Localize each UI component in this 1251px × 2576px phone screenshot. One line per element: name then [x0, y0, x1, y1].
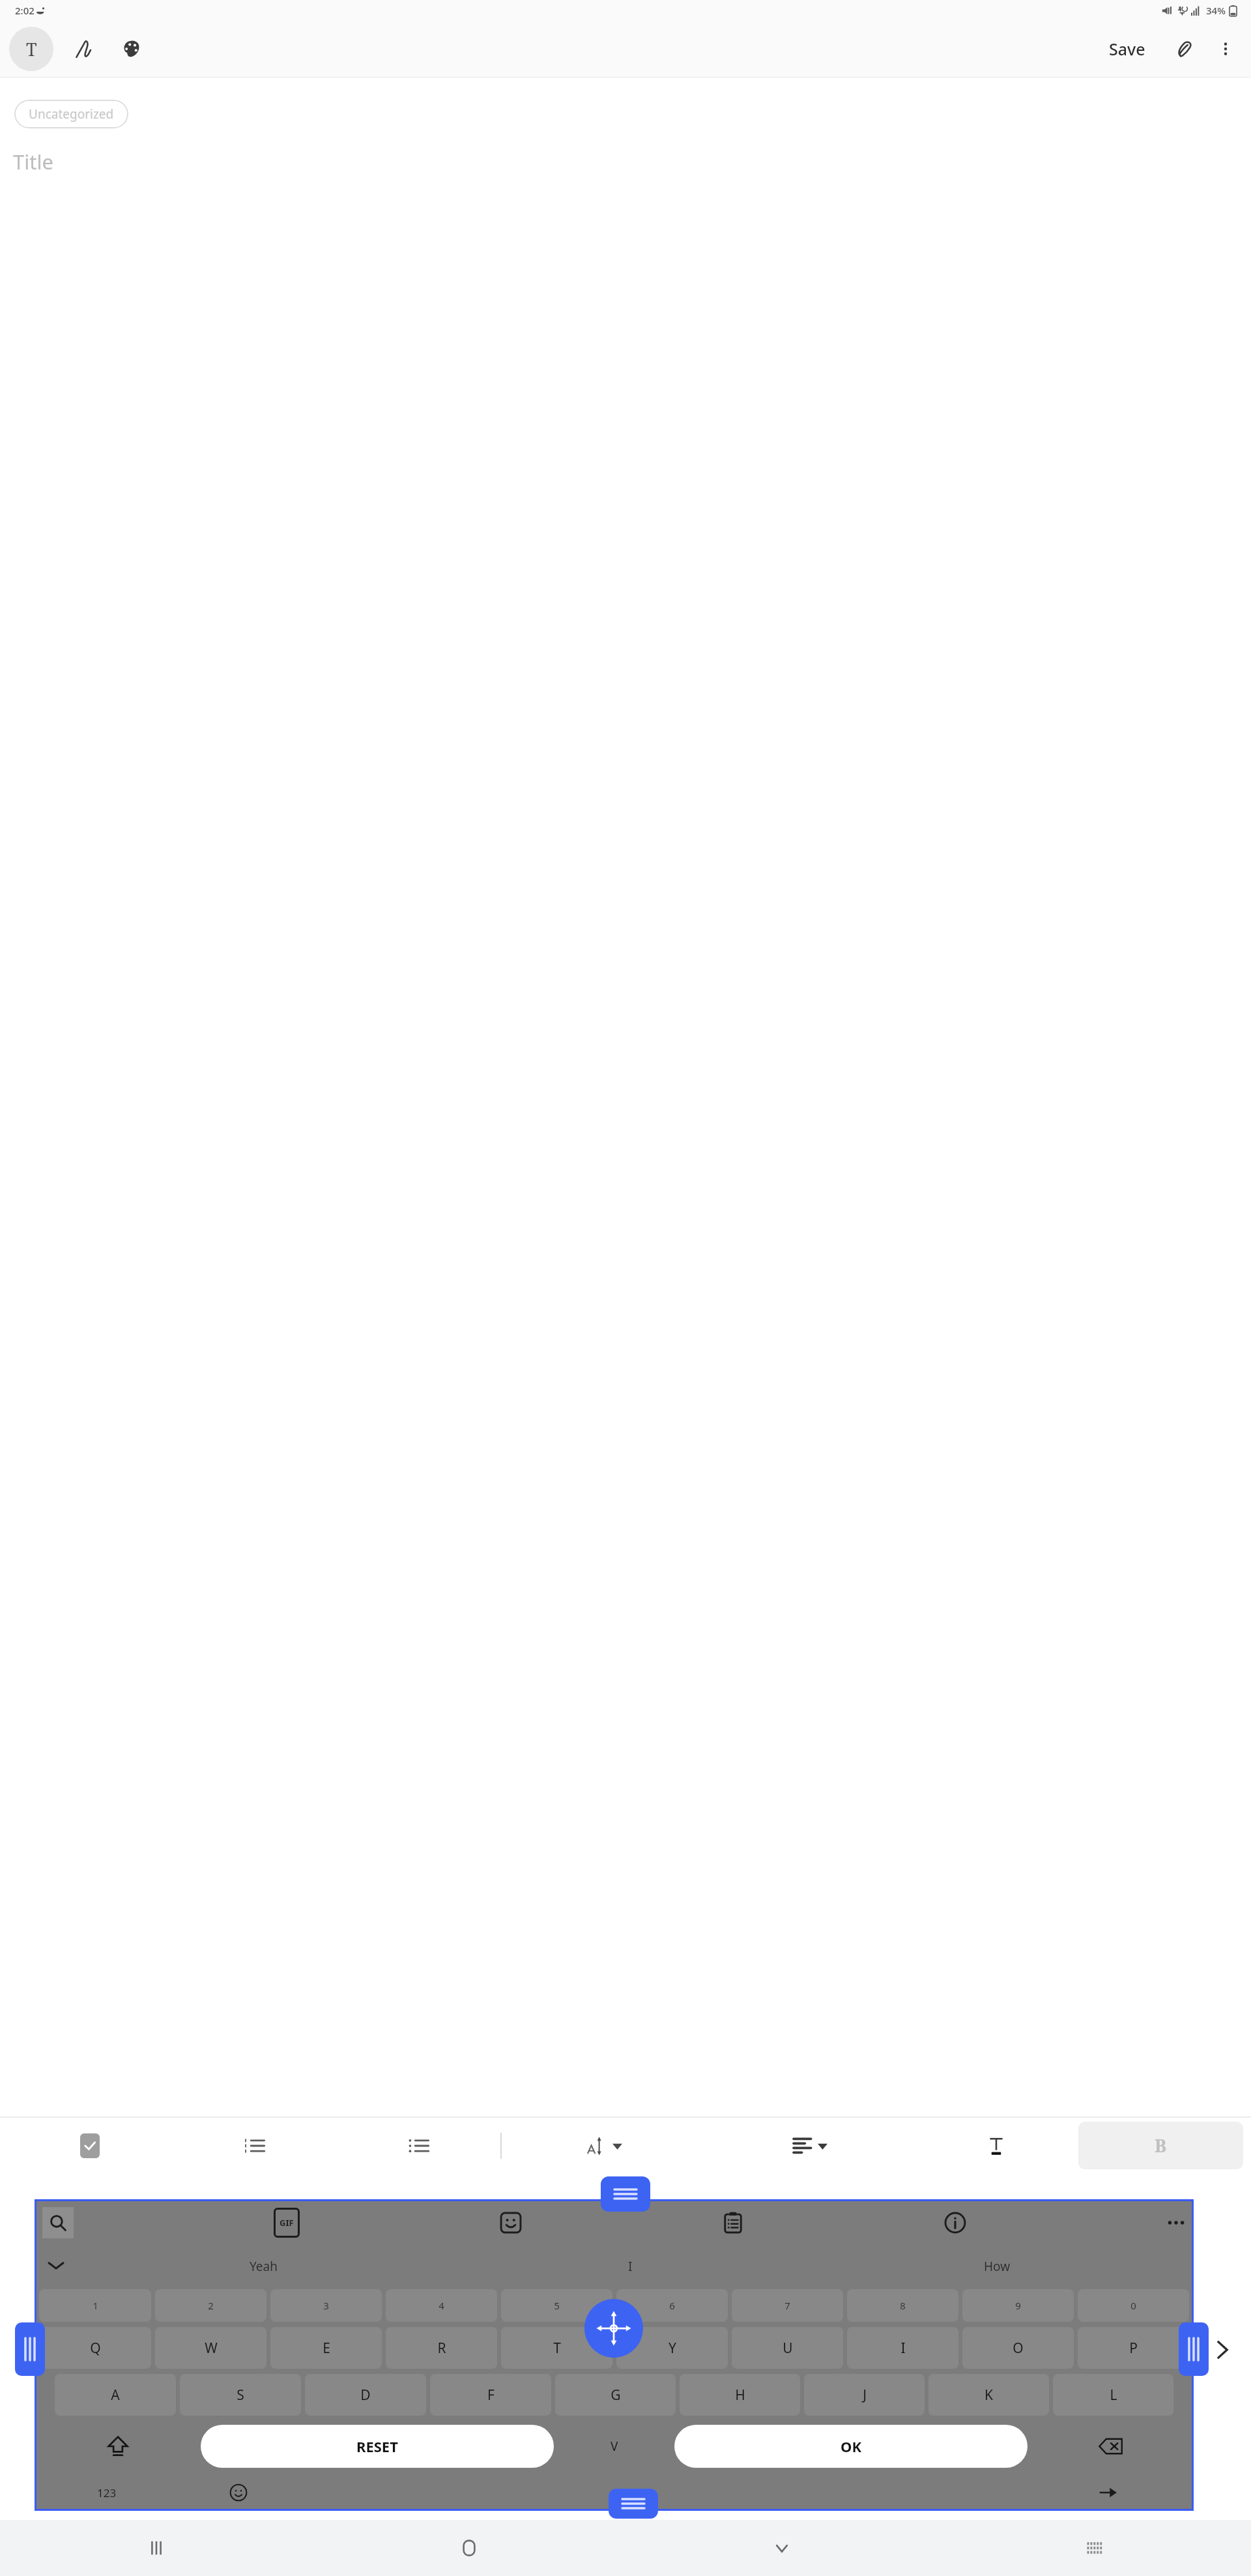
button[interactable]: P — [1078, 2327, 1189, 2369]
button[interactable]: 7 — [732, 2289, 843, 2322]
staticText: 2 — [208, 2299, 214, 2312]
staticText: 0 — [1130, 2299, 1136, 2312]
button[interactable]: Text mode — [9, 27, 53, 71]
button[interactable]: 3 — [270, 2289, 382, 2322]
button[interactable]: Next — [1205, 2333, 1239, 2367]
staticText: H — [735, 2386, 745, 2405]
staticText: OK — [841, 2437, 862, 2456]
button[interactable]: OK — [674, 2425, 1028, 2468]
button[interactable]: RESET — [201, 2425, 554, 2468]
button[interactable]: J — [804, 2374, 925, 2416]
button[interactable]: T — [501, 2327, 612, 2369]
button[interactable]: D — [305, 2374, 426, 2416]
button[interactable]: Alignment — [708, 2118, 913, 2173]
button[interactable]: Save — [1102, 34, 1152, 64]
staticText: 4 — [439, 2299, 444, 2312]
button[interactable]: A — [55, 2374, 176, 2416]
staticText: 6 — [669, 2299, 675, 2312]
staticText: R — [437, 2339, 446, 2358]
staticText: 34% — [1206, 4, 1226, 17]
button[interactable]: Y — [616, 2327, 728, 2369]
button[interactable]: H — [680, 2374, 800, 2416]
staticText: Uncategorized — [29, 106, 114, 123]
staticText: RESET — [356, 2437, 398, 2456]
button[interactable]: Resize right — [1179, 2322, 1209, 2376]
staticText: How — [984, 2258, 1011, 2275]
button[interactable]: 2 — [155, 2289, 266, 2322]
staticText: 7 — [784, 2299, 790, 2312]
staticText: 2:02 — [15, 4, 35, 17]
button[interactable]: More options — [1209, 33, 1242, 65]
button[interactable]: Font size — [502, 2118, 708, 2173]
staticText: V — [611, 2438, 618, 2455]
button[interactable]: 6 — [616, 2289, 728, 2322]
staticText: Title — [13, 148, 53, 175]
button[interactable]: Q — [39, 2327, 151, 2369]
button[interactable]: O — [962, 2327, 1074, 2369]
button[interactable]: 1 — [39, 2289, 151, 2322]
button[interactable]: Checklist — [8, 2118, 172, 2173]
button[interactable]: R — [386, 2327, 497, 2369]
button[interactable]: 9 — [962, 2289, 1074, 2322]
button[interactable]: 4 — [386, 2289, 497, 2322]
button[interactable]: Palette — [113, 31, 150, 67]
staticText: P — [1129, 2339, 1138, 2358]
button[interactable]: U — [732, 2327, 843, 2369]
button[interactable]: G — [555, 2374, 676, 2416]
staticText: F — [487, 2386, 495, 2405]
button[interactable]: L — [1053, 2374, 1173, 2416]
button[interactable]: Handwriting — [66, 31, 103, 67]
staticText: E — [323, 2339, 330, 2358]
staticText: O — [1013, 2339, 1024, 2358]
staticText: Y — [669, 2339, 676, 2358]
staticText: B — [1155, 2133, 1167, 2158]
staticText: S — [237, 2386, 244, 2405]
button[interactable]: 8 — [847, 2289, 958, 2322]
button[interactable]: 0 — [1078, 2289, 1189, 2322]
button[interactable]: Attach — [1166, 31, 1203, 67]
button[interactable]: Bulleted list — [336, 2118, 500, 2173]
button[interactable]: 5 — [501, 2289, 612, 2322]
button[interactable]: Resize bottom — [609, 2489, 658, 2519]
staticText: T — [26, 37, 37, 61]
button[interactable]: Bold — [1078, 2122, 1243, 2169]
button[interactable]: F — [430, 2374, 551, 2416]
staticText: D — [360, 2386, 371, 2405]
staticText: I — [900, 2339, 906, 2358]
button[interactable]: Resize left — [15, 2322, 45, 2376]
staticText: G — [611, 2386, 621, 2405]
staticText: 3 — [323, 2299, 329, 2312]
staticText: Q — [90, 2339, 101, 2358]
button[interactable]: E — [270, 2327, 382, 2369]
staticText: 9 — [1015, 2299, 1021, 2312]
button[interactable]: Resize top — [601, 2176, 650, 2212]
staticText: W — [205, 2339, 218, 2358]
staticText: Save — [1109, 38, 1145, 60]
staticText: K — [985, 2386, 993, 2405]
staticText: I — [628, 2258, 633, 2275]
button[interactable]: Hide keyboard — [625, 2520, 938, 2576]
staticText: A — [111, 2386, 120, 2405]
button[interactable]: Text color — [913, 2118, 1078, 2173]
staticText: GIF — [280, 2217, 294, 2229]
button[interactable]: S — [180, 2374, 301, 2416]
button[interactable]: K — [928, 2374, 1049, 2416]
button[interactable]: Numbered list — [172, 2118, 336, 2173]
button[interactable]: Move keyboard — [584, 2299, 643, 2358]
button[interactable]: I — [847, 2327, 958, 2369]
staticText: T — [553, 2339, 561, 2358]
button[interactable]: Home — [313, 2520, 625, 2576]
staticText: 1 — [93, 2299, 98, 2312]
staticText: J — [863, 2386, 867, 2405]
staticText: 5 — [554, 2299, 560, 2312]
button[interactable]: Uncategorized — [14, 100, 128, 128]
staticText: Yeah — [250, 2258, 278, 2275]
staticText: 8 — [900, 2299, 906, 2312]
button[interactable]: W — [155, 2327, 266, 2369]
staticText: 123 — [97, 2485, 117, 2500]
button[interactable]: Recents — [0, 2520, 313, 2576]
staticText: U — [783, 2339, 793, 2358]
staticText: L — [1110, 2386, 1117, 2405]
button[interactable]: Keyboard layout — [938, 2520, 1251, 2576]
